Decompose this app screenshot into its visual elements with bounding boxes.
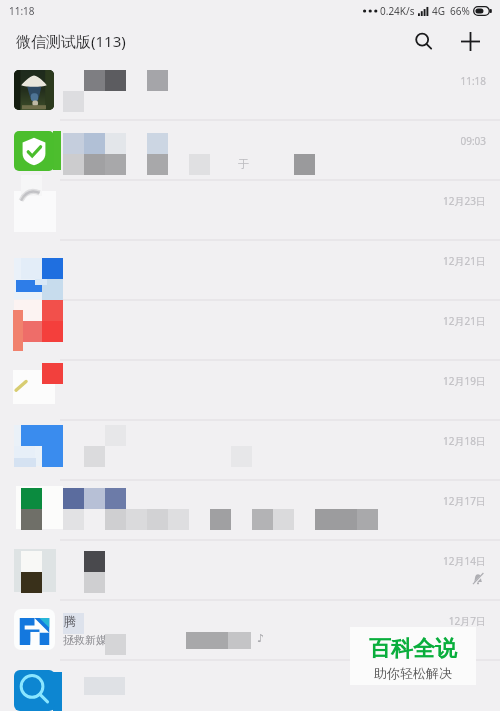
staticText: 腾: [63, 613, 76, 629]
button[interactable]: [0, 240, 500, 300]
staticText: 09:03: [0, 134, 486, 148]
staticText: 拯救新媒: [63, 633, 107, 647]
staticText: 66%: [450, 4, 470, 18]
button[interactable]: [0, 420, 500, 480]
staticText: 4G: [432, 4, 445, 18]
staticText: 12月21日: [0, 314, 486, 328]
button[interactable]: Search: [405, 23, 441, 59]
button[interactable]: [0, 480, 500, 540]
staticText: 于: [238, 157, 249, 171]
staticText: 助你轻松解决: [374, 665, 452, 681]
button[interactable]: [0, 600, 500, 660]
staticText: 12月21日: [0, 254, 486, 268]
button[interactable]: [0, 660, 500, 711]
staticText: 11:18: [0, 74, 486, 88]
staticText: ♪: [257, 632, 265, 645]
button[interactable]: [0, 180, 500, 240]
staticText: 12月14日: [0, 554, 486, 568]
button[interactable]: [0, 300, 500, 360]
staticText: 微信测试版(113): [16, 31, 126, 51]
button[interactable]: [0, 540, 500, 600]
staticText: 11:18: [9, 4, 35, 18]
staticText: 12月19日: [0, 374, 486, 388]
staticText: 12月18日: [0, 434, 486, 448]
staticText: 12月23日: [0, 194, 486, 208]
staticText: 百科全说: [369, 635, 457, 663]
button[interactable]: Add: [452, 23, 488, 59]
staticText: 12月7日: [0, 614, 486, 628]
button[interactable]: [0, 360, 500, 420]
staticText: 12月17日: [0, 494, 486, 508]
button[interactable]: [0, 60, 500, 120]
staticText: 0.24K/s: [380, 4, 415, 18]
button[interactable]: [0, 120, 500, 180]
